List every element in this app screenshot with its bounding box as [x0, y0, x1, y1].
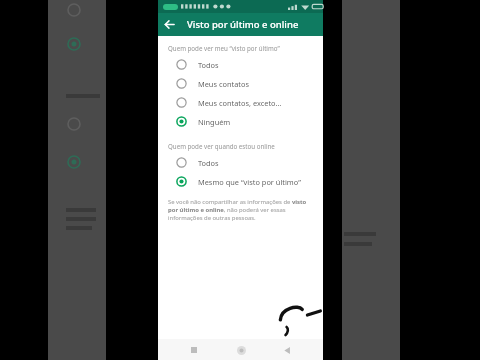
- button[interactable]: Ninguém: [158, 112, 323, 131]
- staticText: Quem pode ver meu “visto por último”: [168, 44, 280, 52]
- button[interactable]: Início: [231, 340, 251, 360]
- button[interactable]: Voltar: [158, 13, 181, 36]
- staticText: Meus contatos, exceto…: [198, 98, 282, 108]
- staticText: Meus contatos: [198, 79, 249, 89]
- staticText: Quem pode ver quando estou online: [168, 142, 275, 150]
- staticText: Ninguém: [198, 117, 231, 127]
- button[interactable]: Todos: [158, 55, 323, 74]
- staticText: Todos: [198, 60, 219, 70]
- button[interactable]: Meus contatos: [158, 74, 323, 93]
- button[interactable]: Voltar: [277, 340, 297, 360]
- staticText: Visto por último e online: [187, 18, 299, 31]
- button[interactable]: Mesmo que “visto por último”: [158, 172, 323, 191]
- button[interactable]: Recentes: [184, 340, 204, 360]
- staticText: Mesmo que “visto por último”: [198, 177, 301, 187]
- staticText: Todos: [198, 158, 219, 168]
- button[interactable]: Meus contatos, exceto…: [158, 93, 323, 112]
- button[interactable]: Todos: [158, 153, 323, 172]
- staticText: Se você não compartilhar as informações …: [168, 198, 311, 222]
